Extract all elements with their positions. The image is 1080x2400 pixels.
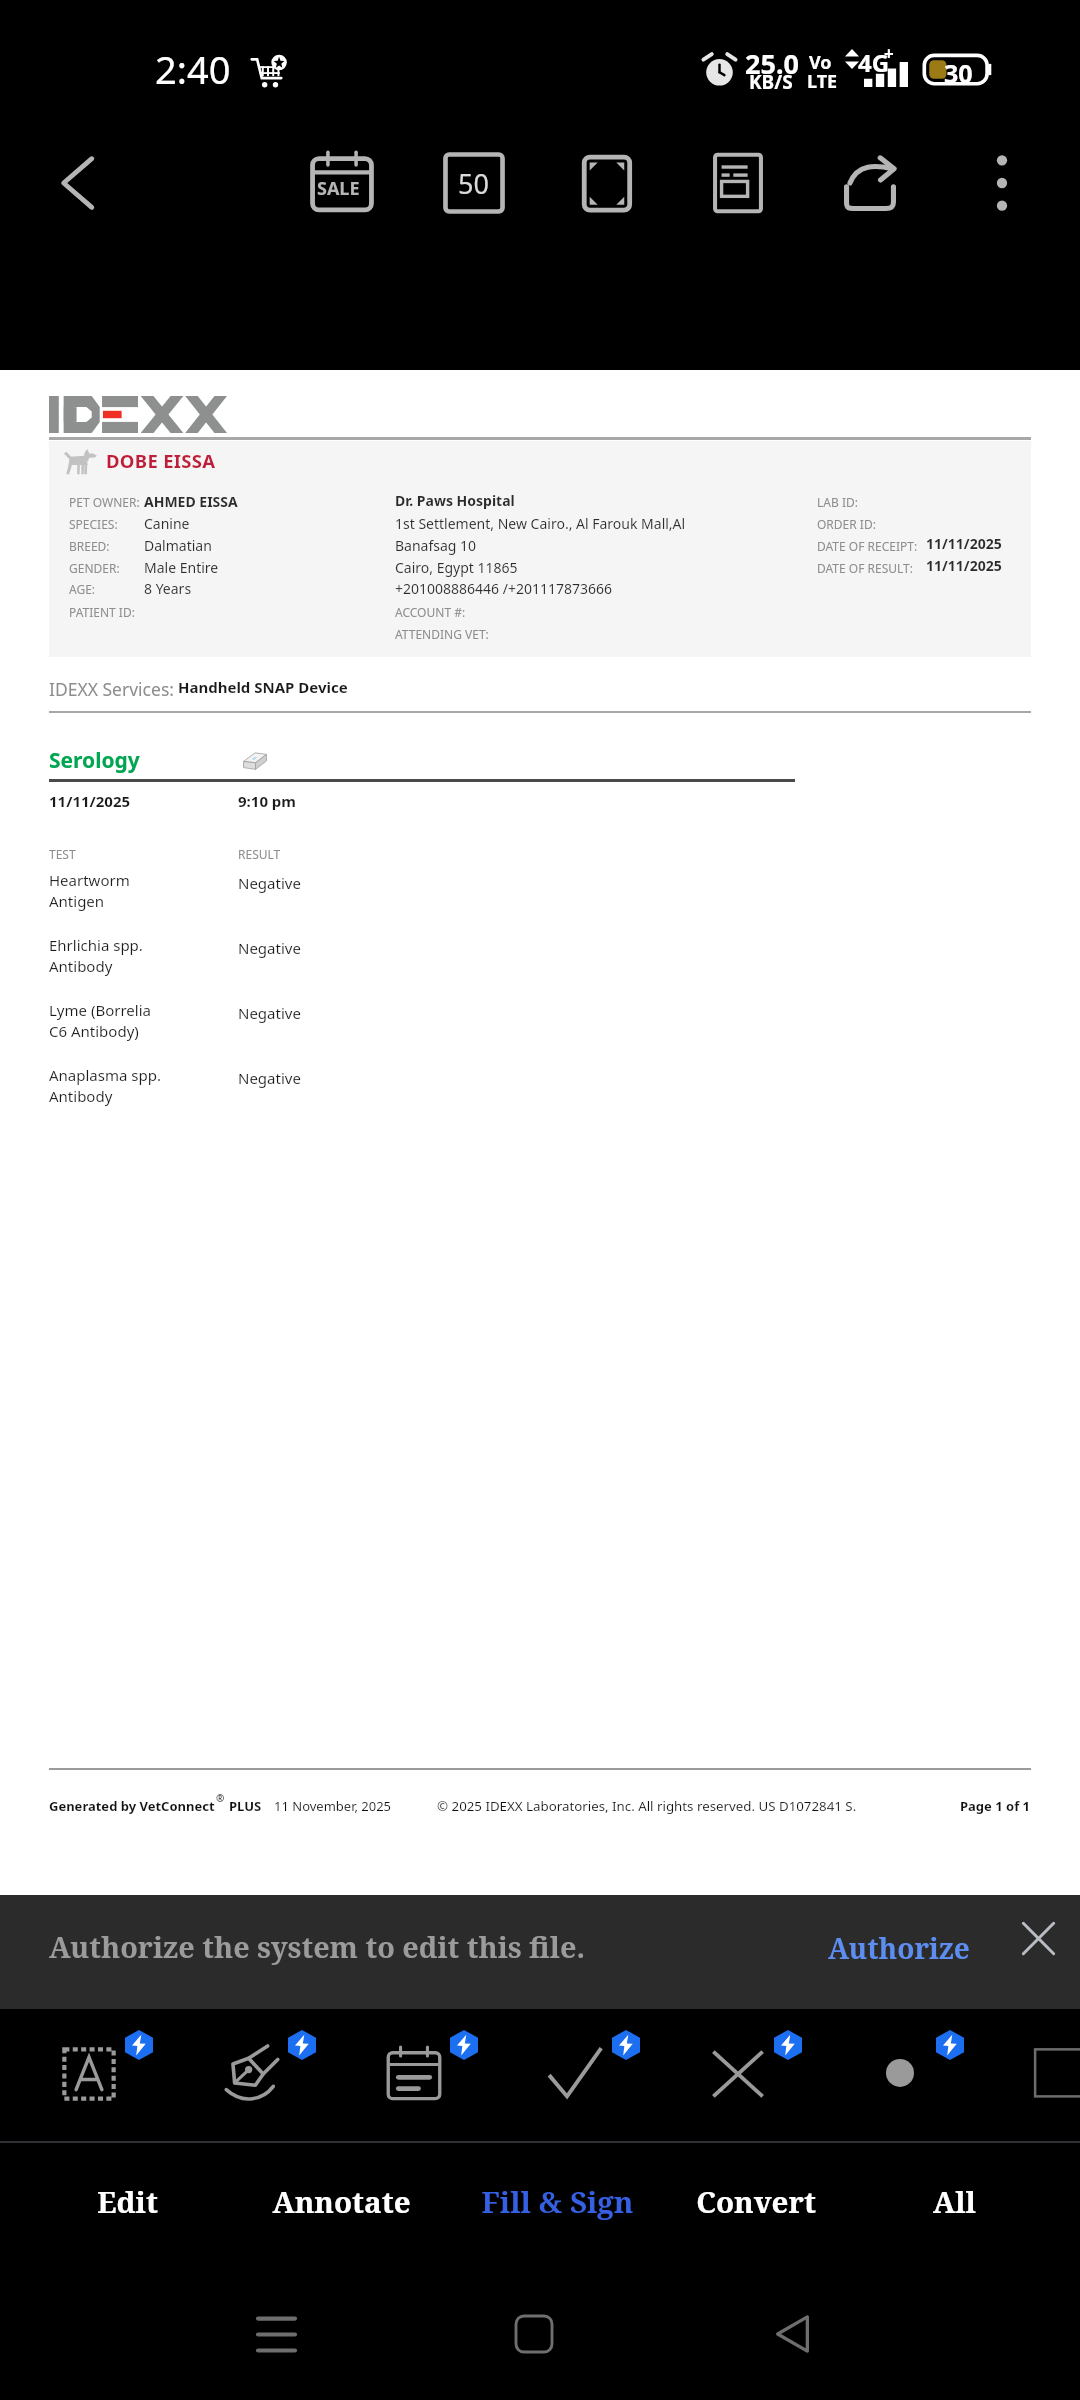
button[interactable]: Edit	[20, 2143, 234, 2255]
staticText: AGE:	[69, 581, 96, 597]
staticText: Canine	[144, 514, 190, 533]
staticText: +	[884, 42, 894, 65]
button[interactable]: All	[847, 2143, 1061, 2255]
staticText: 30	[944, 56, 973, 90]
button[interactable]: Outline	[694, 139, 782, 227]
button[interactable]: Recent apps	[230, 2288, 322, 2380]
staticText: Edit	[97, 2181, 158, 2221]
button[interactable]: Fit screen	[562, 139, 650, 227]
button[interactable]: Date stamp	[361, 2021, 496, 2129]
staticText: Page 1 of 1	[960, 1797, 1031, 1815]
button[interactable]: Sale	[298, 139, 386, 227]
staticText: Convert	[696, 2181, 816, 2221]
staticText: 4G	[858, 46, 890, 79]
staticText: PET OWNER:	[69, 494, 140, 510]
staticText: DOBE EISSA	[106, 448, 216, 473]
staticText: LTE	[807, 69, 838, 94]
staticText: Cairo, Egypt 11865	[395, 558, 518, 577]
button[interactable]: Back	[35, 139, 123, 227]
staticText: 2:40	[155, 43, 231, 95]
button[interactable]: Cross mark	[685, 2021, 820, 2129]
staticText: Negative	[238, 1068, 301, 1088]
staticText: 11/11/2025	[926, 556, 1002, 575]
staticText: +201008886446 /+201117873666	[395, 579, 613, 598]
staticText: Negative	[238, 1003, 301, 1023]
staticText: Male Entire	[144, 558, 219, 577]
button[interactable]: More options	[958, 139, 1046, 227]
staticText: Heartworm Antigen	[49, 870, 130, 912]
staticText: ATTENDING VET:	[395, 626, 489, 642]
staticText: DATE OF RECEIPT:	[817, 538, 918, 554]
button[interactable]: Annotate	[234, 2143, 448, 2255]
button[interactable]: Dot	[847, 2021, 982, 2129]
staticText: Dr. Paws Hospital	[395, 491, 515, 510]
staticText: BREED:	[69, 538, 110, 554]
button[interactable]: Text box	[36, 2021, 171, 2129]
button[interactable]: Convert	[649, 2143, 863, 2255]
staticText: SPECIES:	[69, 516, 118, 532]
staticText: LAB ID:	[817, 494, 858, 510]
staticText: Anaplasma spp. Antibody	[49, 1065, 161, 1107]
staticText: IDEXX Services:	[49, 677, 174, 701]
staticText: PATIENT ID:	[69, 604, 135, 620]
staticText: Vo	[809, 50, 832, 75]
staticText: Authorize the system to edit this file.	[49, 1927, 585, 1966]
staticText: Ehrlichia spp. Antibody	[49, 935, 143, 977]
button[interactable]: Signature	[199, 2021, 334, 2129]
staticText: PLUS	[229, 1797, 262, 1815]
staticText: Banafsag 10	[395, 536, 477, 555]
staticText: 8 Years	[144, 579, 192, 598]
staticText: AHMED EISSA	[144, 492, 238, 511]
staticText: 11/11/2025	[49, 791, 131, 811]
staticText: TEST	[49, 846, 76, 862]
button[interactable]: Page count	[430, 139, 518, 227]
staticText: Lyme (Borrelia C6 Antibody)	[49, 1000, 151, 1042]
staticText: Authorize	[828, 1929, 970, 1967]
staticText: Dalmatian	[144, 536, 212, 555]
staticText: ®	[216, 1791, 225, 1805]
button[interactable]: Rectangle	[1009, 2021, 1080, 2129]
staticText: © 2025 IDEXX Laboratories, Inc. All righ…	[437, 1797, 857, 1815]
button[interactable]: Close	[1003, 1903, 1074, 1974]
staticText: Negative	[238, 938, 301, 958]
button[interactable]: Home	[488, 2288, 580, 2380]
staticText: 50	[458, 165, 489, 202]
staticText: Serology	[49, 746, 140, 775]
staticText: RESULT	[238, 846, 281, 862]
button[interactable]: Back	[746, 2288, 838, 2380]
staticText: Handheld SNAP Device	[178, 677, 348, 697]
staticText: GENDER:	[69, 560, 120, 576]
staticText: ACCOUNT #:	[395, 604, 466, 620]
staticText: 9:10 pm	[238, 791, 296, 811]
staticText: 11 November, 2025	[274, 1797, 392, 1815]
staticText: Annotate	[272, 2181, 411, 2221]
button[interactable]: Check mark	[523, 2021, 658, 2129]
staticText: Generated by VetConnect	[49, 1797, 215, 1815]
staticText: SALE	[317, 176, 360, 201]
staticText: KB/S	[749, 69, 793, 95]
staticText: All	[933, 2181, 976, 2221]
staticText: ORDER ID:	[817, 516, 876, 532]
staticText: Fill & Sign	[481, 2181, 634, 2221]
staticText: Negative	[238, 873, 301, 893]
staticText: 11/11/2025	[926, 534, 1002, 553]
staticText: 25.0	[745, 45, 799, 82]
button[interactable]: Fill & Sign	[450, 2143, 664, 2255]
button[interactable]: Authorize	[807, 1915, 991, 1981]
staticText: DATE OF RESULT:	[817, 560, 913, 576]
staticText: 1st Settlement, New Cairo., Al Farouk Ma…	[395, 514, 686, 533]
button[interactable]: Share	[826, 139, 914, 227]
